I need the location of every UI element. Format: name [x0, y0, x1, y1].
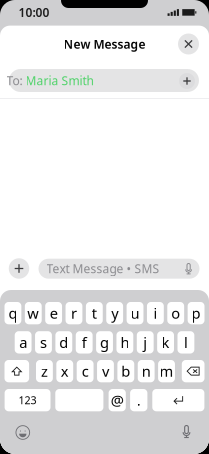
staticText: f [82, 333, 87, 352]
staticText: w [27, 303, 39, 323]
button[interactable]: @ [109, 389, 126, 411]
button[interactable] [55, 389, 103, 411]
button[interactable]: m [158, 360, 175, 382]
button[interactable]: a [15, 331, 32, 353]
button[interactable]: o [167, 302, 184, 324]
staticText: l [184, 333, 188, 352]
staticText: 10:00 [18, 4, 49, 20]
button[interactable]: d [55, 331, 72, 353]
staticText: z [41, 361, 48, 381]
staticText: g [100, 333, 109, 352]
button[interactable]: n [138, 360, 155, 382]
staticText: 123 [18, 393, 36, 407]
staticText: v [102, 361, 109, 381]
button[interactable]: Attach [9, 258, 29, 279]
staticText: p [192, 303, 201, 323]
button[interactable]: l [177, 331, 194, 353]
button[interactable]: u [127, 302, 143, 324]
staticText: r [71, 303, 77, 323]
button[interactable]: v [97, 360, 114, 382]
button[interactable]: g [96, 331, 113, 353]
staticText: New Message [63, 36, 145, 52]
button[interactable]: Close [178, 33, 199, 54]
staticText: y [111, 303, 118, 323]
staticText: To: [6, 72, 22, 88]
button[interactable]: c [77, 360, 94, 382]
staticText: . [137, 390, 141, 410]
button[interactable]: b [117, 360, 134, 382]
button[interactable]: Dictation [181, 425, 192, 438]
staticText: Maria Smith [25, 72, 93, 88]
button[interactable] [182, 360, 204, 382]
staticText: o [171, 303, 180, 323]
staticText: t [92, 303, 97, 323]
button[interactable]: w [25, 302, 42, 324]
button[interactable]: x [56, 360, 73, 382]
button[interactable]: s [35, 331, 52, 353]
staticText: j [143, 333, 147, 352]
button[interactable]: z [36, 360, 53, 382]
staticText: Text Message • SMS [46, 261, 159, 277]
button[interactable]: Emoji [15, 425, 30, 440]
staticText: s [40, 333, 47, 352]
staticText: @ [111, 390, 124, 410]
staticText: m [159, 361, 173, 381]
button[interactable] [4, 360, 29, 382]
button[interactable]: p [188, 302, 205, 324]
staticText: a [19, 333, 27, 352]
staticText: i [153, 303, 157, 323]
staticText: h [120, 333, 129, 352]
staticText: u [130, 303, 139, 323]
button[interactable]: j [137, 331, 154, 353]
button[interactable]: y [106, 302, 123, 324]
button[interactable]: k [157, 331, 174, 353]
button[interactable] [152, 389, 204, 411]
staticText: b [121, 361, 130, 381]
staticText: x [61, 361, 69, 381]
staticText: q [8, 303, 17, 323]
staticText: c [82, 361, 89, 381]
button[interactable]: . [130, 389, 147, 411]
staticText: n [142, 361, 151, 381]
button[interactable]: Dictate [182, 262, 196, 276]
staticText: e [50, 303, 58, 323]
button[interactable]: 123 [5, 389, 50, 411]
button[interactable]: r [66, 302, 82, 324]
button[interactable]: Text Message • SMS [38, 259, 199, 279]
button[interactable]: q [4, 302, 21, 324]
staticText: k [162, 333, 170, 352]
staticText: d [59, 333, 68, 352]
button[interactable]: f [76, 331, 93, 353]
button[interactable]: t [86, 302, 103, 324]
button[interactable]: i [147, 302, 164, 324]
button[interactable]: e [45, 302, 62, 324]
button[interactable]: h [116, 331, 133, 353]
button[interactable]: Add contact [179, 73, 195, 89]
